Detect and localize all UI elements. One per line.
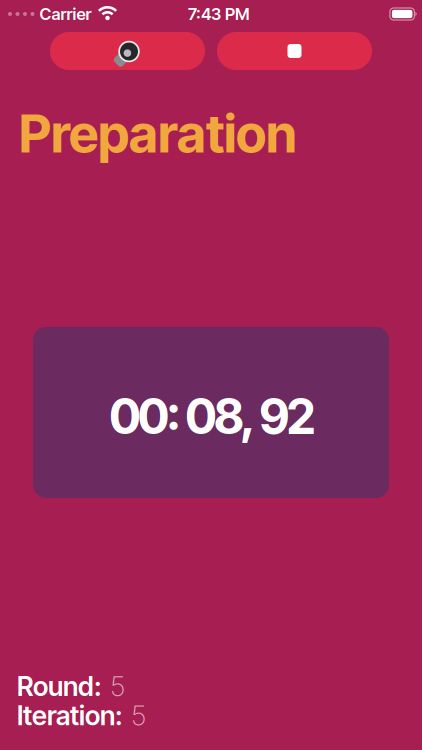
staticText: 92: [259, 387, 316, 445]
staticText: 08,: [185, 387, 255, 445]
staticText: 7:43 PM: [188, 4, 250, 24]
staticText: Carrier: [39, 4, 91, 24]
staticText: Round:: [17, 670, 102, 703]
staticText: 00:: [109, 387, 181, 445]
button[interactable]: Stop: [217, 32, 372, 70]
staticText: Iteration:: [17, 699, 123, 732]
staticText: 5: [131, 699, 146, 732]
staticText: 5: [110, 670, 125, 703]
staticText: Preparation: [19, 102, 297, 165]
button[interactable]: Sound: [50, 32, 205, 70]
